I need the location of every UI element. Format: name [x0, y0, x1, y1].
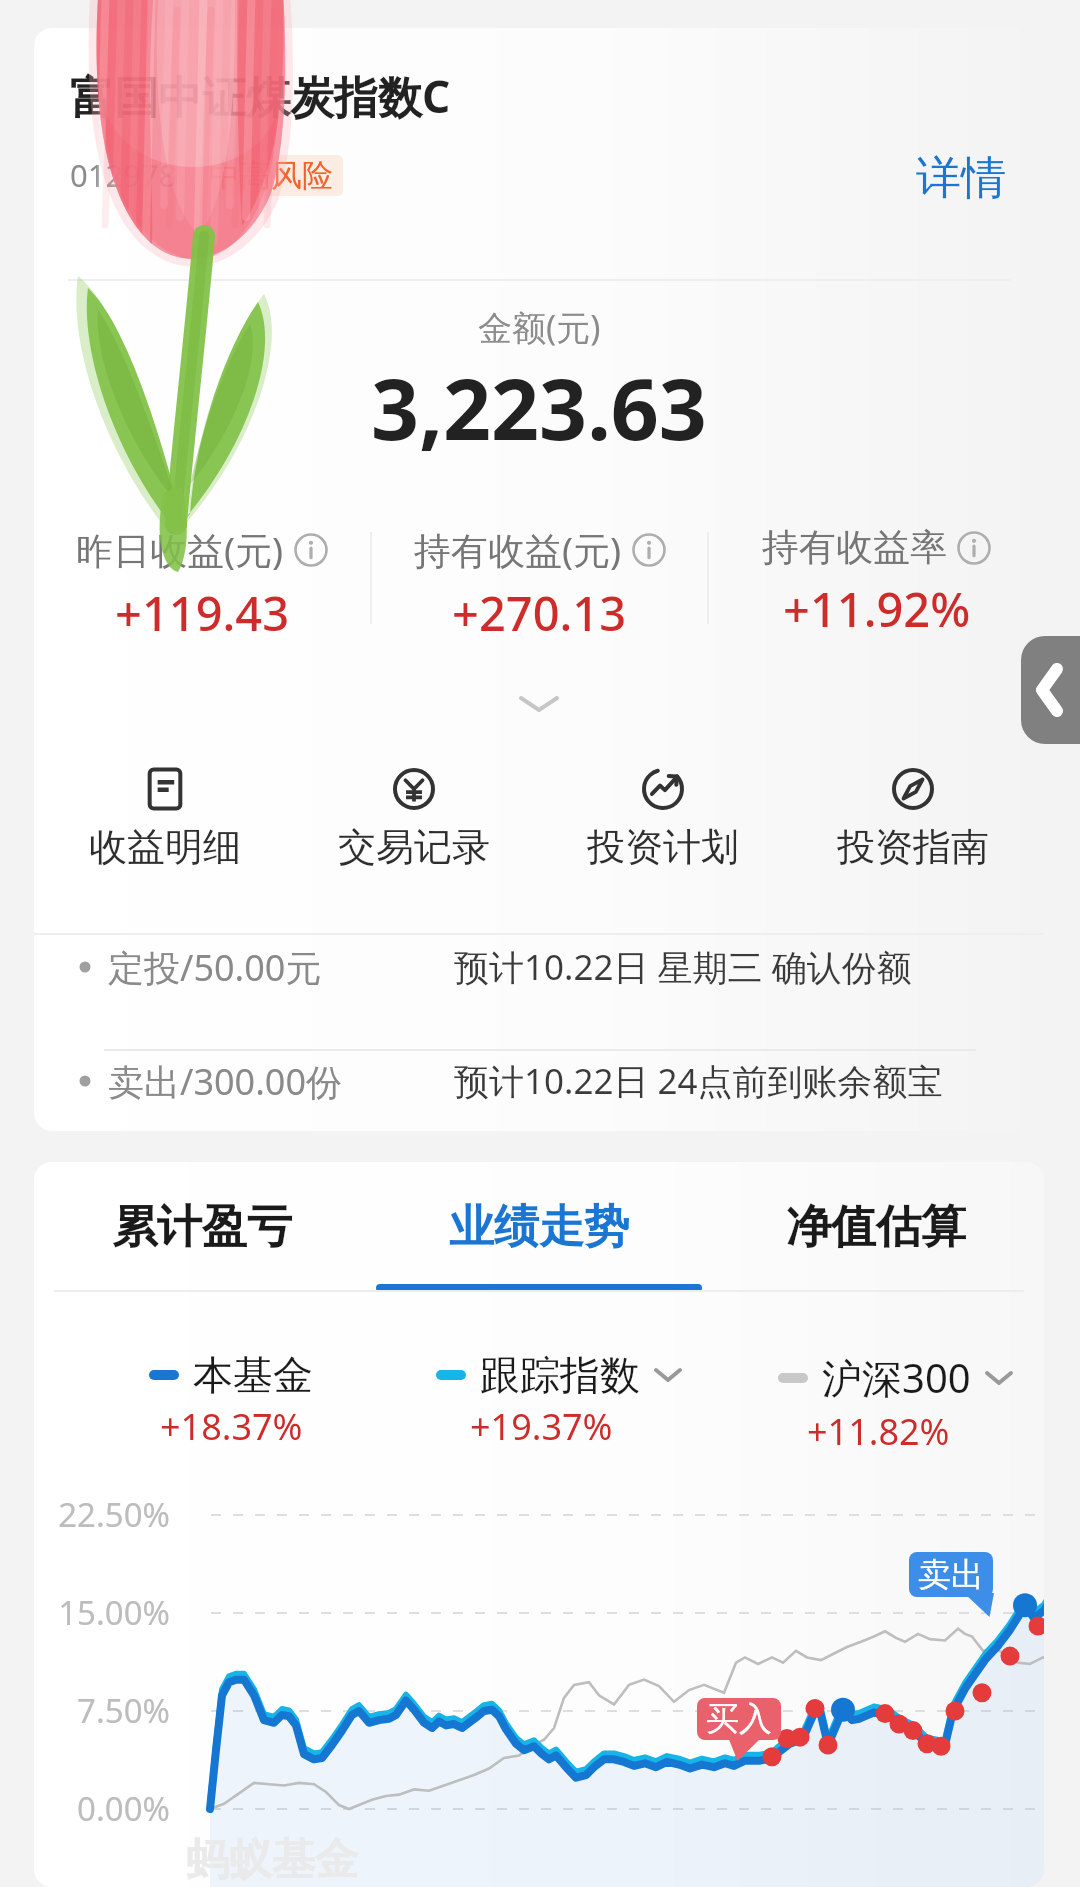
staticText: 投资计划	[587, 823, 739, 871]
button[interactable]: 持有收益率	[709, 524, 1044, 641]
button[interactable]: 展开侧边栏	[1021, 636, 1080, 744]
staticText: 定投/50.00元	[108, 943, 322, 992]
staticText: 累计盈亏	[112, 1199, 292, 1256]
button[interactable]: 投资指南	[788, 768, 1038, 871]
button[interactable]: 投资计划	[538, 768, 788, 871]
button[interactable]: 业绩走势	[370, 1162, 707, 1312]
staticText: 富国中证煤炭指数C	[70, 66, 451, 126]
button[interactable]: 本基金	[34, 1350, 370, 1451]
button[interactable]: 详情	[904, 138, 1018, 219]
staticText: 沪深300	[822, 1350, 971, 1405]
button[interactable]: 卖出/300.00份	[34, 1033, 1044, 1129]
staticText: 15.00%	[46, 1590, 170, 1635]
staticText: +19.37%	[470, 1402, 613, 1451]
staticText: 持有收益(元)	[414, 524, 622, 575]
staticText: 金额(元)	[478, 304, 601, 350]
staticText: +270.13	[452, 581, 627, 645]
button[interactable]: 交易记录	[289, 768, 538, 871]
staticText: 0.00%	[46, 1786, 170, 1831]
staticText: 持有收益率	[762, 524, 947, 571]
staticText: 22.50%	[46, 1492, 170, 1537]
staticText: +11.82%	[807, 1407, 950, 1456]
staticText: +11.92%	[783, 577, 971, 641]
staticText: +119.43	[115, 581, 290, 645]
staticText: +18.37%	[160, 1402, 303, 1451]
button[interactable]: 收益明细	[40, 768, 289, 871]
staticText: 跟踪指数	[480, 1350, 640, 1400]
staticText: 预计10.22日 24点前到账余额宝	[454, 1057, 943, 1105]
staticText: 蚂蚁基金	[186, 1833, 358, 1887]
staticText: 3,223.63	[371, 350, 707, 464]
staticText: 本基金	[193, 1350, 313, 1400]
staticText: 卖出	[918, 1554, 984, 1596]
staticText: 详情	[916, 150, 1006, 207]
staticText: 卖出/300.00份	[108, 1057, 343, 1106]
staticText: 业绩走势	[449, 1199, 629, 1256]
button[interactable]: 净值估算	[707, 1162, 1044, 1312]
staticText: 买入	[706, 1698, 772, 1740]
button[interactable]: 展开	[34, 676, 1044, 732]
button[interactable]: 持有收益(元)	[372, 524, 707, 645]
button[interactable]: 累计盈亏	[34, 1162, 370, 1312]
staticText: 012978	[70, 154, 177, 196]
button[interactable]: 定投/50.00元	[34, 919, 1044, 1015]
staticText: 净值估算	[786, 1199, 966, 1256]
staticText: 交易记录	[338, 823, 490, 871]
staticText: 昨日收益(元)	[76, 524, 284, 575]
staticText: 中高风险	[209, 156, 333, 195]
staticText: 投资指南	[837, 823, 989, 871]
staticText: 预计10.22日 星期三 确认份额	[454, 943, 912, 991]
button[interactable]: 沪深300	[707, 1350, 1044, 1456]
staticText: 收益明细	[89, 823, 241, 871]
button[interactable]: 昨日收益(元)	[34, 524, 370, 645]
button[interactable]: 跟踪指数	[370, 1350, 707, 1451]
staticText: 7.50%	[46, 1688, 170, 1733]
